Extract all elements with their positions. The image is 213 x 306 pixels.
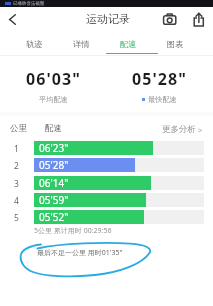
button[interactable]: 2 — [0, 155, 213, 172]
staticText: > — [198, 125, 203, 135]
button[interactable]: 更多分析 — [162, 124, 203, 135]
staticText: 平均配速 — [39, 95, 68, 104]
staticText: 配速 — [120, 39, 137, 49]
staticText: 06'23" — [39, 141, 69, 155]
staticText: 详情 — [73, 39, 90, 49]
staticText: 最快配速 — [148, 95, 177, 104]
staticText: 轨迹 — [26, 39, 43, 49]
button[interactable]: Share — [189, 10, 209, 30]
button[interactable]: 图表 — [152, 31, 199, 55]
staticText: 06'03" — [26, 68, 82, 90]
staticText: 运动记录 — [86, 12, 130, 26]
button[interactable]: Camera — [159, 10, 179, 30]
staticText: 05'52" — [39, 210, 69, 224]
button[interactable]: 05'28" — [106, 58, 213, 106]
staticText: 更多分析 — [162, 124, 196, 135]
staticText: 配速 — [45, 123, 62, 134]
staticText: 公里 — [10, 123, 27, 134]
button[interactable]: 4 — [0, 190, 213, 207]
staticText: 3 — [14, 178, 19, 190]
staticText: 06'14" — [39, 176, 69, 190]
button[interactable]: 详情 — [58, 31, 105, 55]
button[interactable]: 轨迹 — [10, 31, 58, 55]
staticText: 最后不足一公里 用时01'35" — [37, 248, 123, 258]
staticText: 4 — [14, 195, 19, 207]
button[interactable]: 配速 — [105, 31, 152, 55]
staticText: 2 — [14, 160, 19, 172]
button[interactable]: 06'03" — [0, 58, 107, 106]
button[interactable]: Back — [4, 11, 20, 27]
staticText: 5 — [14, 212, 19, 224]
staticText: 05'28" — [132, 68, 188, 90]
staticText: 1 — [14, 143, 19, 155]
staticText: 05'28" — [39, 158, 69, 172]
staticText: 05'59" — [39, 193, 69, 207]
button[interactable]: 1 — [0, 138, 213, 155]
staticText: 已播放音乐截图 — [13, 1, 45, 7]
button[interactable]: 3 — [0, 173, 213, 190]
button[interactable]: 5 — [0, 207, 213, 224]
staticText: 5公里 累计用时 00:29:56 — [34, 226, 112, 236]
staticText: 图表 — [167, 39, 184, 49]
